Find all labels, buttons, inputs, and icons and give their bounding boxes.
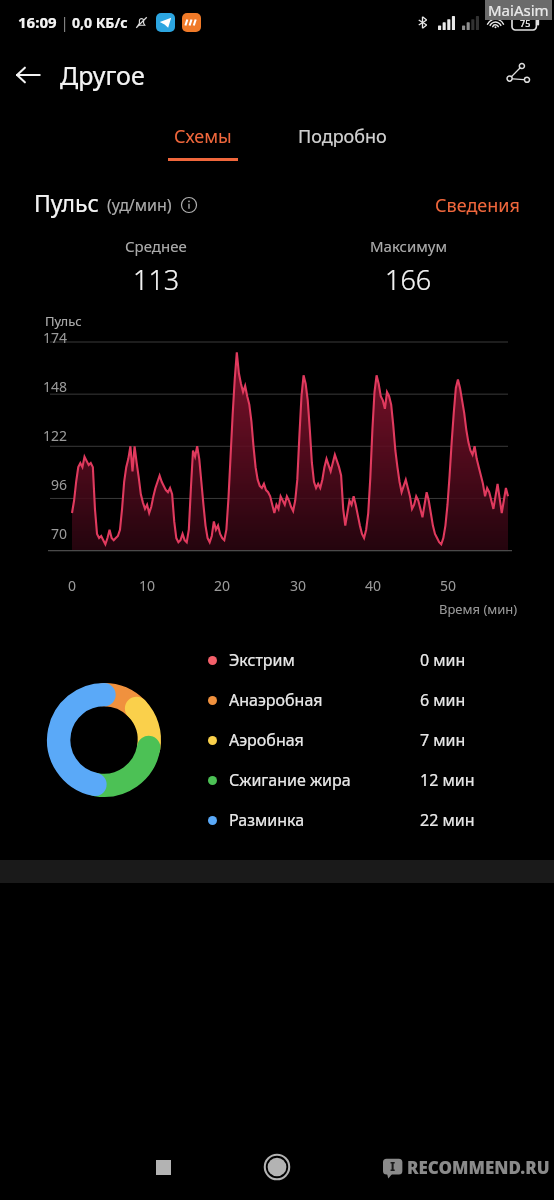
staticText: Разминка <box>229 809 305 831</box>
staticText: (уд/мин) <box>107 194 172 216</box>
staticText: 7 мин <box>420 729 466 751</box>
button[interactable]: Назад <box>0 47 56 103</box>
staticText: Схемы <box>174 124 232 149</box>
button[interactable]: Сжигание жира <box>208 760 536 800</box>
staticText: Анаэробная <box>229 689 323 711</box>
staticText: 30 <box>290 576 307 595</box>
staticText: Пульс <box>34 187 99 218</box>
button[interactable]: Разминка <box>208 800 536 840</box>
staticText: | <box>57 13 72 32</box>
staticText: 16:09 <box>18 12 57 32</box>
staticText: 148 <box>43 377 68 396</box>
button[interactable]: Схемы <box>156 124 250 161</box>
staticText: Среднее <box>125 236 187 256</box>
button[interactable]: Экстрим <box>208 640 536 680</box>
button[interactable]: Сведения <box>435 193 520 218</box>
staticText: 174 <box>43 328 68 347</box>
staticText: Сжигание жира <box>229 769 351 791</box>
button[interactable]: Недавние <box>141 1145 185 1189</box>
staticText: 96 <box>51 475 68 494</box>
staticText: 0 мин <box>420 649 466 671</box>
staticText: 166 <box>385 261 432 298</box>
staticText: 113 <box>133 261 180 298</box>
staticText: I <box>390 1158 396 1174</box>
staticText: Максимум <box>370 236 447 256</box>
button[interactable]: Подробно <box>286 124 399 161</box>
staticText: 0,0 КБ/с <box>72 13 128 32</box>
staticText: 70 <box>51 524 68 543</box>
staticText: Подробно <box>298 124 387 149</box>
staticText: 20 <box>214 576 231 595</box>
staticText: 6 мин <box>420 689 466 711</box>
staticText: 40 <box>365 576 382 595</box>
staticText: Экстрим <box>229 649 295 671</box>
staticText: 0 <box>68 576 77 595</box>
staticText: RECOMMEND.RU <box>407 1156 550 1179</box>
staticText: Другое <box>60 58 145 92</box>
staticText: 12 мин <box>420 769 475 791</box>
button[interactable]: Поделиться <box>492 49 544 101</box>
staticText: Пульс <box>45 312 82 330</box>
button[interactable]: Информация <box>179 195 199 215</box>
staticText: 22 мин <box>420 809 475 831</box>
staticText: 122 <box>43 426 68 445</box>
staticText: Время (мин) <box>439 600 518 618</box>
button[interactable]: Домой <box>253 1143 301 1191</box>
staticText: 50 <box>440 576 457 595</box>
staticText: Аэробная <box>229 729 304 751</box>
staticText: 10 <box>139 576 156 595</box>
button[interactable]: Анаэробная <box>208 680 536 720</box>
button[interactable]: Аэробная <box>208 720 536 760</box>
staticText: MaiAsim <box>488 0 549 20</box>
staticText: 75 <box>520 17 531 29</box>
staticText: Сведения <box>435 193 520 218</box>
